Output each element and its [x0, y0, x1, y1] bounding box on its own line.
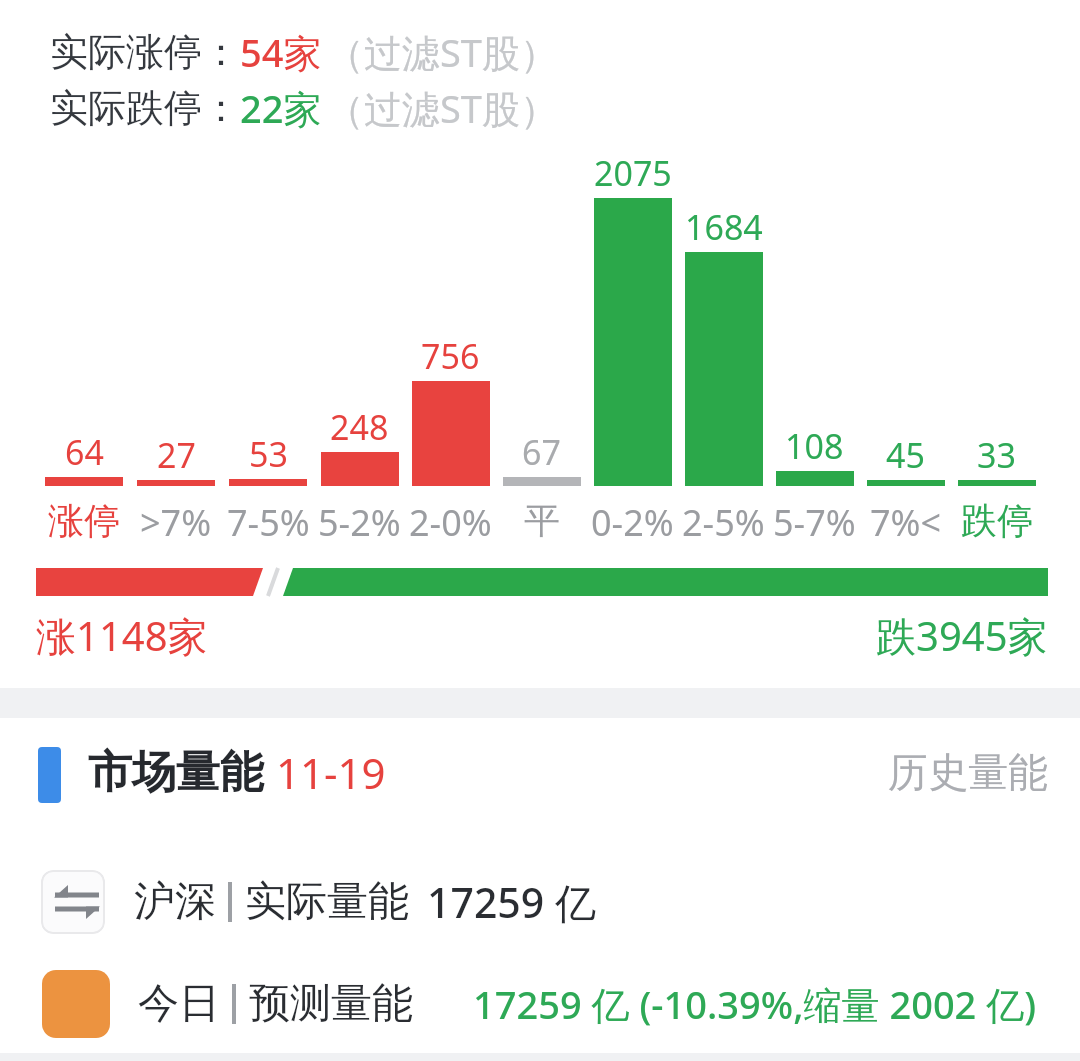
- staticText: （过滤ST股）: [326, 26, 558, 78]
- staticText: 27: [157, 432, 196, 478]
- staticText: 平: [524, 498, 560, 543]
- staticText: 2-5%: [682, 498, 765, 547]
- staticText: 53: [249, 431, 288, 477]
- staticText: 跌停: [961, 498, 1033, 543]
- staticText: 涨1148家: [36, 608, 208, 663]
- staticText: 22家: [240, 82, 322, 134]
- staticText: 沪深: [134, 876, 216, 928]
- staticText: 248: [330, 404, 389, 450]
- staticText: 涨停: [48, 498, 120, 543]
- staticText: 历史量能: [888, 747, 1048, 797]
- staticText: 1684: [685, 204, 763, 250]
- staticText: 今日: [138, 978, 220, 1030]
- staticText: 64: [65, 429, 104, 475]
- staticText: 市场量能: [88, 745, 264, 800]
- staticText: >7%: [140, 498, 212, 547]
- staticText: 实际量能: [245, 876, 409, 928]
- staticText: 实际涨停：: [50, 28, 240, 76]
- staticText: 33: [977, 432, 1016, 478]
- staticText: 67: [522, 429, 561, 475]
- staticText: 108: [785, 423, 844, 469]
- staticText: 11-19: [276, 744, 386, 801]
- button[interactable]: 今日: [42, 970, 1037, 1038]
- staticText: 7-5%: [227, 498, 310, 547]
- staticText: 2075: [594, 150, 672, 196]
- staticText: 17259 亿: [427, 874, 596, 930]
- staticText: （过滤ST股）: [326, 82, 558, 134]
- staticText: 7%<: [870, 498, 942, 547]
- staticText: 17259 亿 (-10.39%,缩量 2002 亿): [473, 978, 1037, 1030]
- staticText: 0-2%: [591, 498, 674, 547]
- staticText: 5-2%: [318, 498, 401, 547]
- staticText: 跌3945家: [876, 608, 1048, 663]
- staticText: 2-0%: [409, 498, 492, 547]
- button[interactable]: 沪深: [41, 870, 596, 934]
- button[interactable]: 历史量能: [888, 747, 1048, 797]
- staticText: 实际跌停：: [50, 84, 240, 132]
- staticText: 预测量能: [249, 978, 413, 1030]
- staticText: 54家: [240, 26, 322, 78]
- staticText: 45: [886, 432, 925, 478]
- staticText: 5-7%: [773, 498, 856, 547]
- staticText: 756: [421, 333, 480, 379]
